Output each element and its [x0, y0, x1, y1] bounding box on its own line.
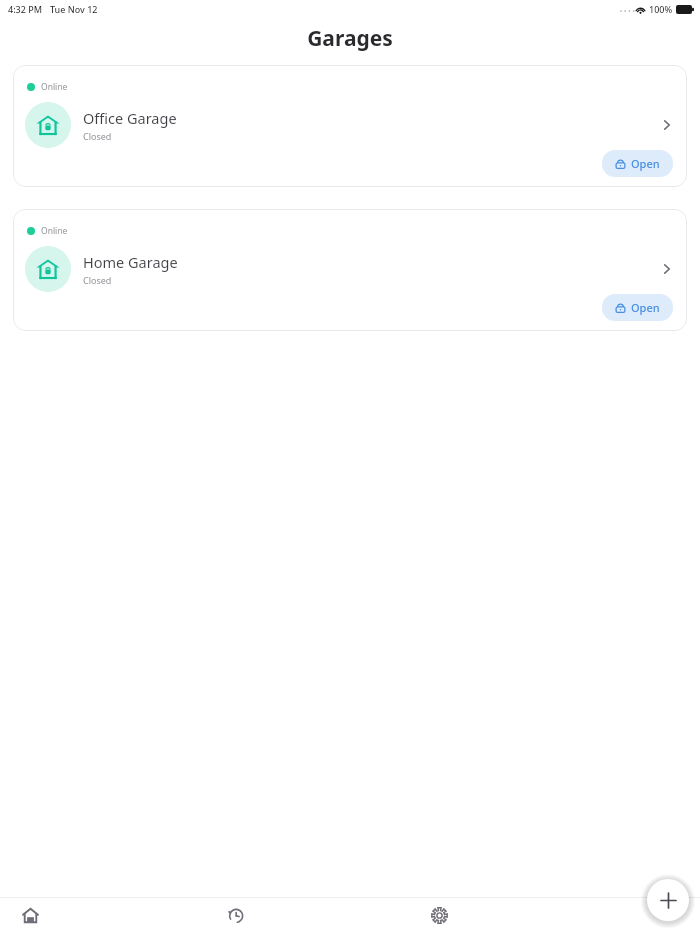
button[interactable]: Home [0, 897, 60, 934]
staticText: Garages [0, 24, 700, 53]
button[interactable]: Settings [409, 897, 469, 934]
staticText: Tue Nov 12 [50, 3, 98, 15]
staticText: Online [41, 81, 68, 93]
staticText: Home Garage [83, 252, 178, 272]
staticText: Office Garage [83, 108, 177, 128]
staticText: 4:32 PM [8, 3, 42, 15]
staticText: Open [631, 300, 660, 315]
button[interactable]: Open [602, 150, 673, 177]
staticText: Closed [83, 130, 112, 142]
button[interactable]: Online [13, 209, 687, 331]
staticText: Open [631, 156, 660, 171]
staticText: Closed [83, 274, 112, 286]
staticText: 100% [649, 3, 673, 15]
staticText: Online [41, 225, 68, 237]
button[interactable]: Open [602, 294, 673, 321]
button[interactable]: Online [13, 65, 687, 187]
button[interactable]: Add garage [647, 879, 689, 921]
button[interactable]: History [205, 897, 265, 934]
